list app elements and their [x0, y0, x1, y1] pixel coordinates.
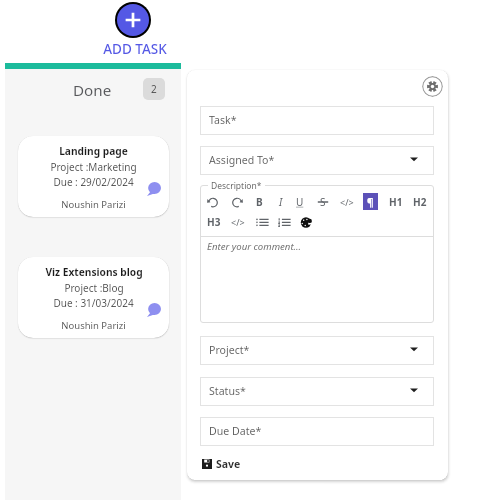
- staticText: B: [256, 195, 263, 209]
- staticText: </>: [340, 196, 354, 208]
- button[interactable]: S: [320, 195, 326, 209]
- staticText: Project*: [209, 343, 250, 357]
- button[interactable]: </>: [340, 196, 354, 208]
- staticText: </>: [231, 216, 245, 228]
- staticText: Project :Marketing: [50, 160, 137, 174]
- staticText: H1: [389, 195, 403, 209]
- button[interactable]: </>: [231, 216, 245, 228]
- staticText: Assigned To*: [209, 153, 275, 167]
- button[interactable]: Save: [202, 457, 241, 471]
- staticText: Due Date*: [209, 424, 262, 438]
- staticText: Save: [216, 457, 241, 471]
- button[interactable]: Due Date*: [200, 417, 434, 446]
- staticText: Project :Blog: [64, 281, 124, 295]
- staticText: ADD TASK: [97, 40, 173, 58]
- staticText: Landing page: [59, 144, 128, 158]
- button[interactable]: Viz Extensions blog: [18, 257, 169, 338]
- button[interactable]: Tool: [256, 216, 269, 229]
- button[interactable]: Status*: [200, 377, 434, 406]
- staticText: Status*: [209, 384, 246, 398]
- button[interactable]: Tool: [300, 216, 313, 229]
- staticText: Done: [73, 80, 112, 101]
- staticText: Due : 31/03/2024: [53, 296, 134, 310]
- button[interactable]: Assigned To*: [200, 146, 434, 175]
- button[interactable]: Landing page: [18, 136, 169, 217]
- button[interactable]: Settings: [422, 76, 443, 97]
- button[interactable]: ADD TASK: [97, 2, 173, 58]
- button[interactable]: Paragraph: [363, 193, 378, 210]
- staticText: U: [296, 195, 304, 209]
- button[interactable]: H3: [207, 215, 221, 229]
- button[interactable]: Tool: [231, 195, 244, 208]
- button[interactable]: Task*: [200, 106, 434, 135]
- staticText: Enter your comment...: [207, 240, 301, 253]
- staticText: H3: [207, 215, 221, 229]
- staticText: I: [279, 195, 283, 209]
- button[interactable]: Tool: [206, 195, 219, 208]
- button[interactable]: U: [296, 195, 304, 209]
- staticText: Task*: [209, 113, 237, 127]
- button[interactable]: B: [256, 195, 263, 209]
- staticText: Noushin Parizi: [61, 198, 126, 211]
- staticText: Description*: [211, 180, 262, 192]
- button[interactable]: H2: [413, 195, 427, 209]
- button[interactable]: I: [279, 195, 283, 209]
- button[interactable]: H1: [389, 195, 403, 209]
- staticText: Viz Extensions blog: [45, 265, 143, 279]
- staticText: 2: [151, 82, 157, 96]
- staticText: S: [320, 195, 326, 209]
- staticText: Due : 29/02/2024: [53, 175, 134, 189]
- button[interactable]: Project*: [200, 336, 434, 365]
- staticText: ¶: [367, 195, 374, 209]
- staticText: Noushin Parizi: [61, 319, 126, 332]
- button[interactable]: 2: [143, 78, 165, 100]
- button[interactable]: Tool: [278, 216, 291, 229]
- staticText: H2: [413, 195, 427, 209]
